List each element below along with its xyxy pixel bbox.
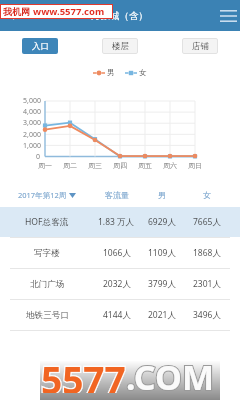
staticText: 5,000 xyxy=(23,96,41,106)
staticText: 入口 xyxy=(32,41,49,52)
staticText: 周日 xyxy=(188,161,202,170)
staticText: 地铁三号口 xyxy=(26,310,69,321)
staticText: 2,000 xyxy=(23,130,41,140)
staticText: 女 xyxy=(139,68,147,77)
staticText: .COM xyxy=(126,354,214,393)
staticText: 客流量 xyxy=(105,190,129,200)
staticText: 1066人 xyxy=(103,247,131,259)
button[interactable]: 入口 xyxy=(22,38,58,54)
staticText: 周一 xyxy=(38,161,52,170)
staticText: 6929人 xyxy=(148,216,176,228)
button[interactable]: Back xyxy=(0,0,24,31)
staticText: 3,000 xyxy=(23,118,41,128)
staticText: 北门广场 xyxy=(30,279,65,290)
button[interactable]: 店铺 xyxy=(182,38,218,54)
staticText: 男 xyxy=(107,68,115,77)
staticText: 4144人 xyxy=(103,309,131,321)
staticText: www.5577.com xyxy=(33,5,105,18)
button[interactable]: HOF总客流 xyxy=(0,207,240,237)
button[interactable]: 写字楼 xyxy=(0,238,240,268)
staticText: 男 xyxy=(158,190,166,200)
button[interactable]: 2017年第12周 xyxy=(18,190,76,200)
staticText: 0 xyxy=(36,152,41,162)
staticText: 5577 xyxy=(41,354,126,393)
staticText: 1868人 xyxy=(193,247,221,259)
button[interactable]: 楼层 xyxy=(102,38,138,54)
staticText: 2021人 xyxy=(148,309,176,321)
staticText: 7665人 xyxy=(193,216,221,228)
staticText: 女 xyxy=(203,190,211,200)
staticText: 周二 xyxy=(63,161,77,170)
staticText: 万象城（含） xyxy=(91,10,148,22)
staticText: 周五 xyxy=(138,161,152,170)
staticText: 周四 xyxy=(113,161,127,170)
staticText: 2017年第12周 xyxy=(18,190,67,200)
staticText: 周六 xyxy=(163,161,177,170)
staticText: 我机网 xyxy=(3,6,30,17)
staticText: 2301人 xyxy=(193,278,221,290)
staticText: HOF总客流 xyxy=(25,216,69,228)
staticText: 店铺 xyxy=(192,41,209,52)
staticText: 5577 xyxy=(41,354,126,393)
staticText: 写字楼 xyxy=(34,248,60,259)
staticText: 2032人 xyxy=(103,278,131,290)
staticText: 3496人 xyxy=(193,309,221,321)
button[interactable]: Menu xyxy=(216,0,240,31)
staticText: 1,000 xyxy=(23,141,41,151)
staticText: 4,000 xyxy=(23,107,41,117)
staticText: 3799人 xyxy=(148,278,176,290)
staticText: 1.83 万人 xyxy=(98,216,135,228)
button[interactable]: 地铁三号口 xyxy=(0,300,240,330)
staticText: 周三 xyxy=(88,161,102,170)
staticText: 楼层 xyxy=(112,41,129,52)
staticText: 1109人 xyxy=(148,247,176,259)
staticText: .COM xyxy=(126,354,214,393)
button[interactable]: 北门广场 xyxy=(0,269,240,299)
